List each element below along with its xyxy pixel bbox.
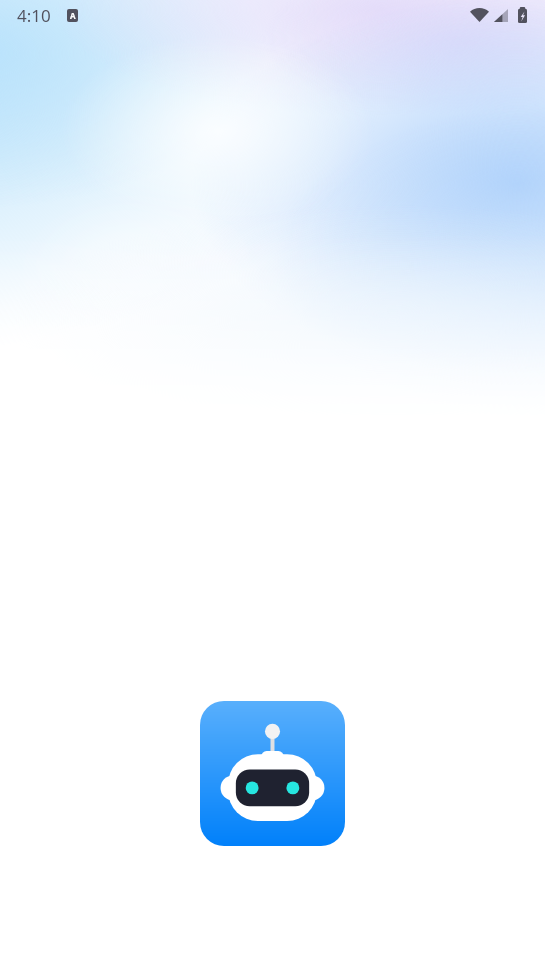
staticText: 4:10 bbox=[17, 4, 51, 27]
staticText: A bbox=[70, 10, 76, 21]
button[interactable]: Open app bbox=[200, 701, 345, 846]
